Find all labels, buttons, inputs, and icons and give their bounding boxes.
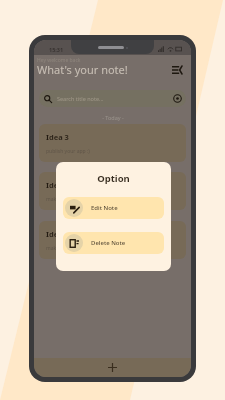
- button[interactable]: Idea 3: [39, 124, 186, 162]
- staticText: publish your app :): [46, 148, 90, 155]
- staticText: What's your note!: [37, 62, 128, 77]
- staticText: Idea 3: [46, 132, 69, 142]
- staticText: Idea 2: [46, 180, 69, 190]
- button[interactable]: Edit Note: [63, 197, 164, 219]
- staticText: 15:31: [49, 46, 64, 53]
- staticText: Search title note...: [57, 95, 104, 102]
- staticText: Hey welcome back: [37, 57, 81, 64]
- staticText: Edit Note: [91, 204, 118, 212]
- staticText: - Today -: [93, 114, 133, 121]
- staticText: make a design: [46, 245, 81, 252]
- button[interactable]: Idea 1: [39, 221, 186, 259]
- button[interactable]: Delete Note: [63, 232, 164, 254]
- button[interactable]: Search title note...: [39, 90, 186, 107]
- button[interactable]: Menu: [170, 63, 184, 77]
- button[interactable]: Idea 2: [39, 172, 186, 210]
- button[interactable]: Add note: [34, 358, 191, 377]
- staticText: make your app: [46, 196, 82, 203]
- staticText: Delete Note: [91, 239, 126, 247]
- staticText: Option: [56, 172, 171, 185]
- staticText: Idea 1: [46, 229, 69, 239]
